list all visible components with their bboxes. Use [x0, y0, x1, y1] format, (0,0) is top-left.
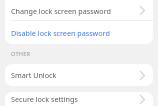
staticText: Change lock screen password — [11, 6, 137, 16]
button[interactable]: Disable lock screen password — [5, 21, 153, 44]
staticText: Secure lock settings — [11, 94, 137, 104]
staticText: OTHER — [11, 50, 31, 58]
staticText: Smart Unlock — [11, 70, 137, 80]
staticText: Disable lock screen password — [11, 28, 146, 38]
button[interactable]: Change lock screen password — [5, 0, 153, 21]
button[interactable]: Secure lock settings — [5, 92, 153, 106]
button[interactable]: Smart Unlock — [5, 64, 153, 86]
